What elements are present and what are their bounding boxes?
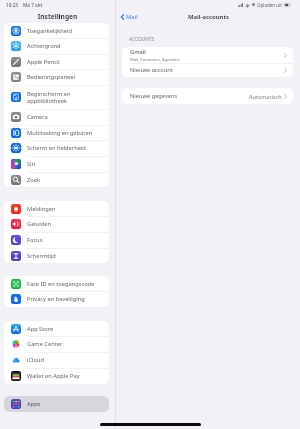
staticText: Apple Pencil (27, 58, 106, 66)
button[interactable]: iCloud (4, 352, 109, 368)
staticText: Geluiden (27, 220, 106, 228)
button[interactable]: Multitasking en gebaren (4, 125, 109, 140)
staticText: Instellingen (0, 12, 115, 21)
staticText: Scherm en helderheid (27, 144, 106, 152)
button[interactable]: Siri (4, 156, 109, 172)
button[interactable]: Game Center (4, 336, 109, 352)
staticText: Camera (27, 113, 106, 121)
staticText: Beginscherm en appbibliotheek (27, 90, 106, 105)
staticText: Focus (27, 236, 106, 244)
button[interactable]: Apple Pencil (4, 54, 109, 69)
staticText: Achtergrond (27, 42, 106, 50)
button[interactable]: App Store (4, 321, 109, 336)
staticText: Apps (27, 400, 41, 408)
button[interactable]: Schermtijd (4, 248, 109, 263)
staticText: Automatisch (249, 93, 282, 100)
staticText: Mail (126, 13, 138, 21)
staticText: Mail-accounts (188, 13, 229, 21)
button[interactable]: Zoek (4, 172, 109, 187)
staticText: Privacy en beveiliging (27, 295, 106, 303)
button[interactable]: Mail (116, 13, 138, 21)
button[interactable]: Nieuwe account (122, 63, 293, 77)
button[interactable]: Geluiden (4, 216, 109, 232)
button[interactable]: Scherm en helderheid (4, 140, 109, 156)
staticText: ACCOUNTS (129, 36, 155, 42)
staticText: Nieuwe gegevens (130, 92, 249, 100)
staticText: Wallet en Apple Pay (27, 372, 106, 380)
staticText: Mail, Contacten, Agenda's (130, 57, 180, 63)
staticText: iCloud (27, 356, 106, 364)
staticText: Meldingen (27, 205, 106, 213)
staticText: App Store (27, 325, 106, 333)
button[interactable]: Nieuwe gegevens (122, 88, 293, 104)
staticText: Opladen uit (257, 2, 282, 8)
button[interactable]: Beginscherm en appbibliotheek (4, 85, 109, 109)
staticText: Gmail (130, 48, 146, 56)
button[interactable]: Meldingen (4, 201, 109, 216)
button[interactable]: Face ID en toegangscode (4, 276, 109, 291)
staticText: Nieuwe account (130, 66, 284, 74)
button[interactable]: Camera (4, 109, 109, 125)
button[interactable]: Focus (4, 232, 109, 248)
button[interactable]: Gmail (122, 47, 293, 63)
button[interactable]: Privacy en beveiliging (4, 291, 109, 307)
button[interactable]: Bedieningspaneel (4, 69, 109, 85)
staticText: Siri (27, 160, 106, 168)
button[interactable]: Apps (4, 396, 109, 412)
staticText: Multitasking en gebaren (27, 129, 106, 137)
staticText: Game Center (27, 340, 106, 348)
staticText: Ma 7 okt (23, 2, 43, 8)
button[interactable]: Wallet en Apple Pay (4, 368, 109, 384)
button[interactable]: Achtergrond (4, 38, 109, 54)
staticText: 10:23 (6, 2, 19, 8)
staticText: Bedieningspaneel (27, 73, 106, 81)
staticText: Schermtijd (27, 252, 106, 260)
staticText: Zoek (27, 176, 106, 184)
staticText: Face ID en toegangscode (27, 280, 106, 288)
staticText: Toegankelijkheid (27, 27, 106, 35)
button[interactable]: Toegankelijkheid (4, 23, 109, 38)
